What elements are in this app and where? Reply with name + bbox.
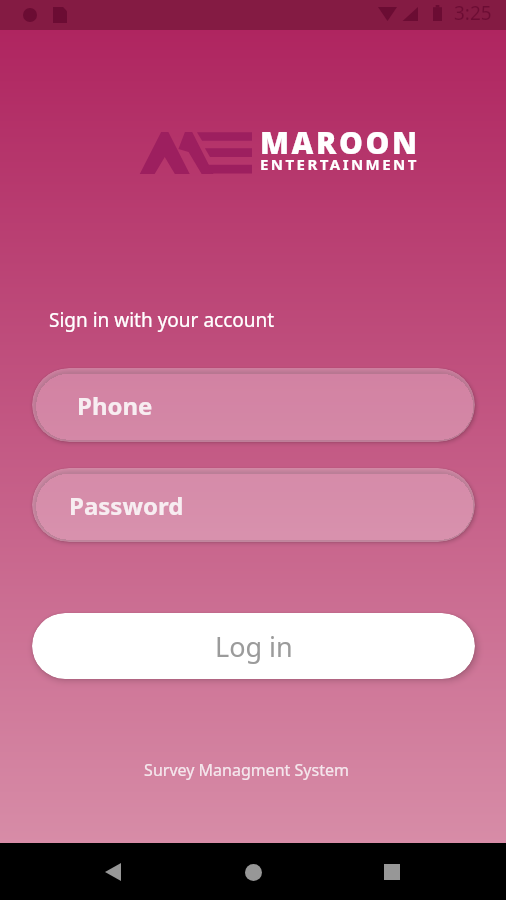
staticText: Sign in with your account bbox=[49, 307, 275, 333]
staticText: MAROON bbox=[260, 122, 420, 163]
button[interactable]: Recents bbox=[372, 852, 412, 892]
button[interactable]: Log in bbox=[32, 613, 475, 679]
staticText: Log in bbox=[215, 628, 293, 665]
button[interactable]: Back bbox=[93, 852, 133, 892]
staticText: 3:25 bbox=[454, 0, 492, 26]
staticText: ENTERTAINMENT bbox=[260, 154, 419, 174]
button[interactable]: Password bbox=[32, 468, 475, 542]
staticText: Password bbox=[69, 489, 184, 522]
button[interactable]: Phone bbox=[32, 368, 475, 442]
staticText: Survey Managment System bbox=[144, 759, 349, 781]
staticText: Phone bbox=[77, 389, 153, 422]
button[interactable]: Home bbox=[233, 852, 273, 892]
